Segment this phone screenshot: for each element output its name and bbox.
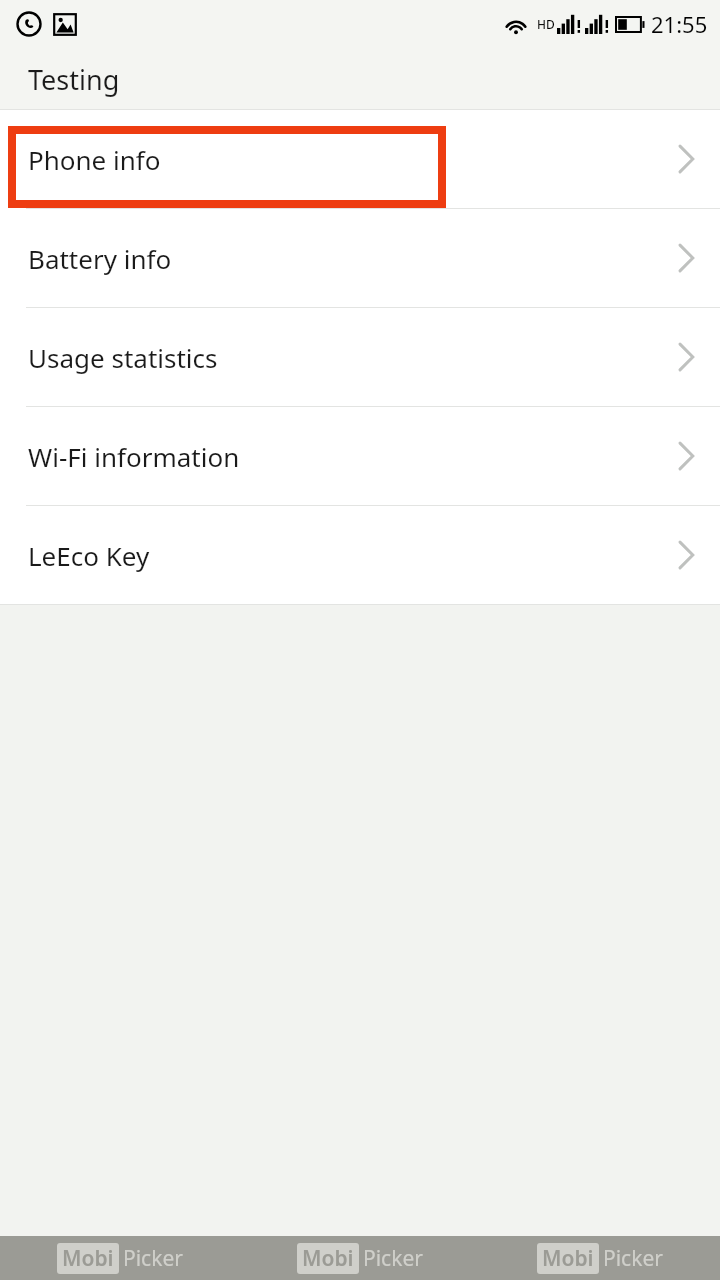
staticText: Usage statistics: [28, 340, 676, 375]
button[interactable]: Wi-Fi information: [0, 407, 720, 505]
other: Open Wi-Fi information: [676, 439, 696, 473]
other: Open LeEco Key: [676, 538, 696, 572]
other: Open Battery info: [676, 241, 696, 275]
button[interactable]: Phone info: [0, 110, 720, 208]
staticText: Mobi: [542, 1244, 594, 1273]
staticText: Phone info: [28, 142, 676, 177]
staticText: Wi-Fi information: [28, 439, 676, 474]
other: Open Phone info: [676, 142, 696, 176]
staticText: Mobi: [62, 1244, 114, 1273]
staticText: Mobi: [302, 1244, 354, 1273]
staticText: Picker: [123, 1244, 183, 1273]
other: Open Usage statistics: [676, 340, 696, 374]
staticText: Picker: [363, 1244, 423, 1273]
staticText: 21:55: [651, 9, 708, 39]
button[interactable]: Battery info: [0, 209, 720, 307]
staticText: Battery info: [28, 241, 676, 276]
staticText: Picker: [603, 1244, 663, 1273]
staticText: HD: [537, 16, 555, 32]
staticText: Testing: [28, 61, 120, 98]
button[interactable]: Usage statistics: [0, 308, 720, 406]
button[interactable]: LeEco Key: [0, 506, 720, 604]
staticText: LeEco Key: [28, 538, 676, 573]
